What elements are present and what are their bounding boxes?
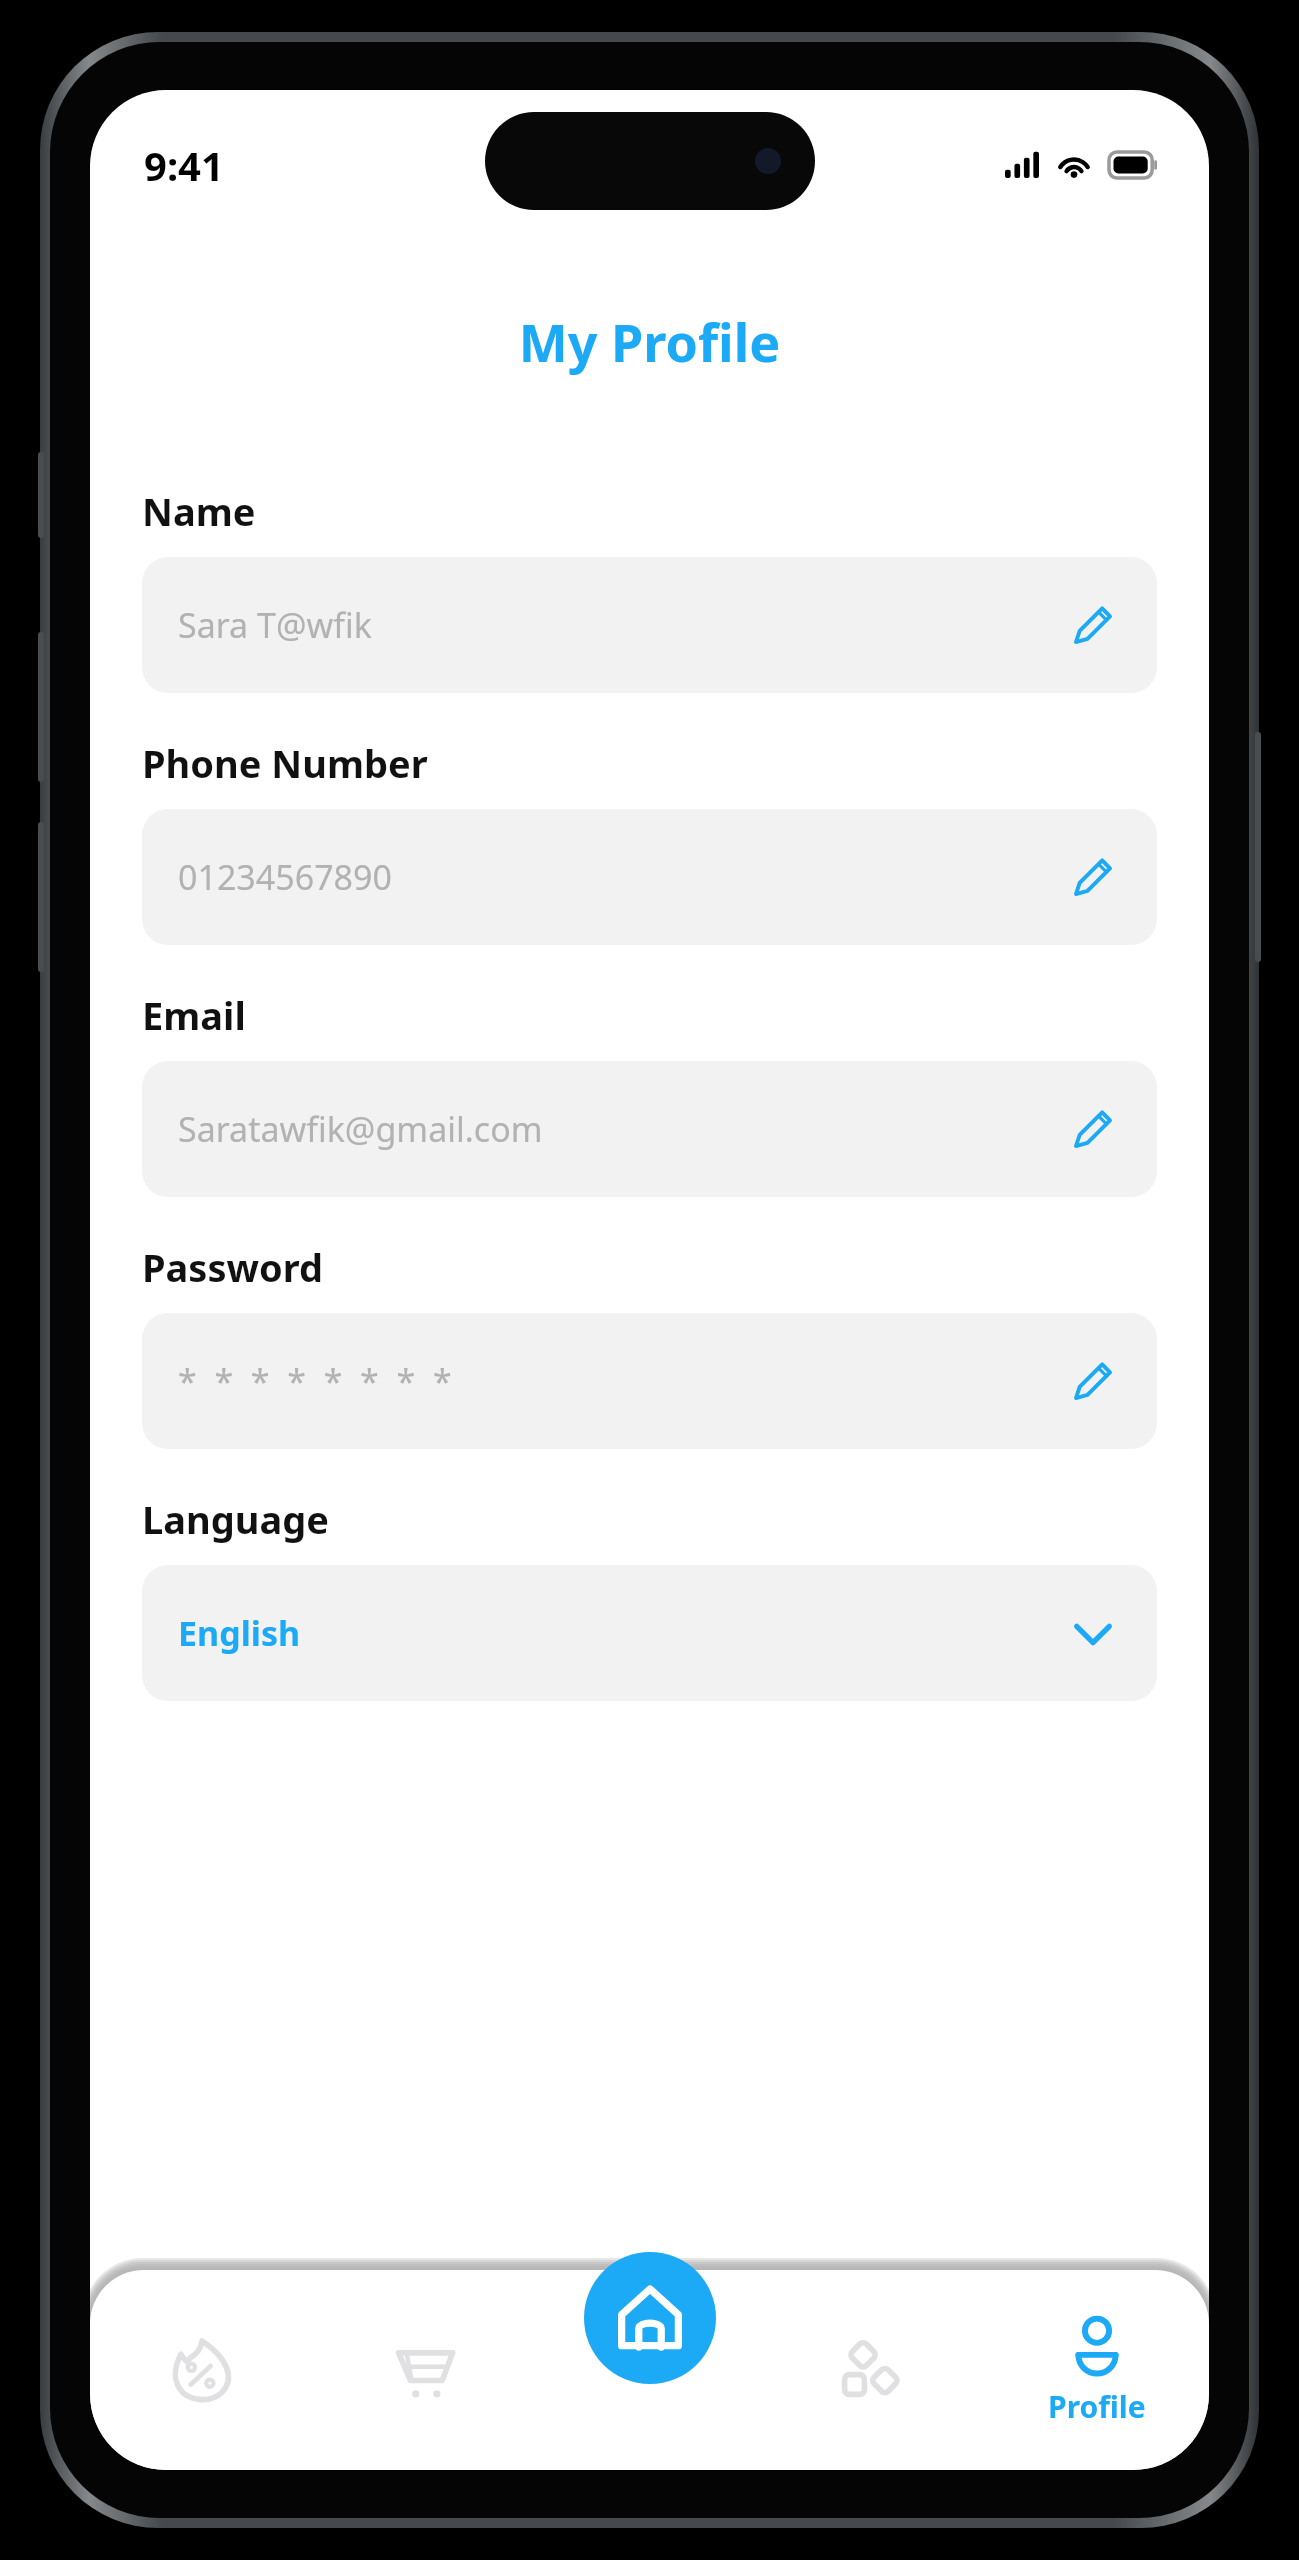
other: Edit Email [1065,1101,1121,1157]
staticText: My Profile [90,306,1209,377]
staticText: * * * * * * * * [178,1358,1065,1404]
other: Edit Password [1065,1353,1121,1409]
staticText: Password [142,1241,324,1293]
staticText: Language [142,1493,329,1545]
other: Edit Phone Number [1065,849,1121,905]
other: Change language [1065,1605,1121,1661]
button[interactable]: 01234567890 [142,809,1157,945]
staticText: Profile [1048,2386,1146,2427]
button[interactable]: Sara T@wfik [142,557,1157,693]
button[interactable]: Profile [985,2270,1209,2470]
button[interactable]: Saratawfik@gmail.com [142,1061,1157,1197]
staticText: English [178,1610,1065,1656]
other: Edit Name [1065,597,1121,653]
staticText: 01234567890 [178,854,1065,900]
button[interactable]: * * * * * * * * [142,1313,1157,1449]
button[interactable]: Categories [761,2270,985,2470]
staticText: Name [142,485,256,537]
button[interactable]: Cart [313,2270,537,2470]
staticText: Email [142,989,246,1041]
staticText: Sara T@wfik [178,602,1065,648]
button[interactable]: English [142,1565,1157,1701]
staticText: Phone Number [142,737,428,789]
staticText: 9:41 [144,138,224,192]
button[interactable]: Offers [90,2270,313,2470]
staticText: Saratawfik@gmail.com [178,1106,1065,1152]
button[interactable]: Home [584,2252,716,2384]
